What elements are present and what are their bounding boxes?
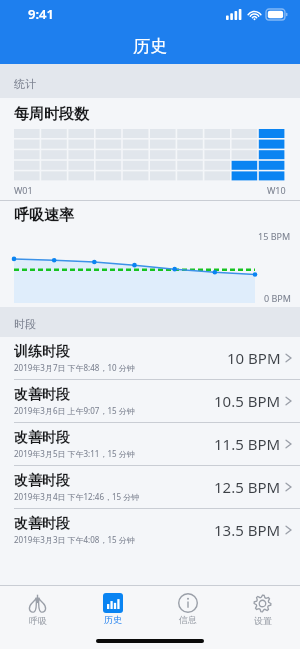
staticText: 2019年3月3日 下午4:08，15 分钟: [14, 534, 135, 545]
button[interactable]: 训练时段: [0, 337, 300, 379]
button[interactable]: 改善时段: [0, 509, 300, 551]
staticText: 2019年3月6日 上午9:07，15 分钟: [14, 405, 135, 416]
staticText: 信息: [179, 614, 197, 625]
staticText: 10 BPM: [227, 348, 281, 368]
staticText: 改善时段: [14, 386, 70, 404]
button[interactable]: 改善时段: [0, 423, 300, 465]
staticText: W10: [267, 184, 286, 196]
staticText: 呼吸速率: [14, 206, 74, 225]
button[interactable]: 呼吸: [0, 586, 75, 632]
staticText: 统计: [14, 77, 36, 91]
staticText: 12.5 BPM: [214, 477, 281, 497]
button[interactable]: 改善时段: [0, 466, 300, 508]
staticText: 9:41: [28, 5, 54, 23]
button[interactable]: 信息: [150, 586, 225, 632]
staticText: 每周时段数: [14, 105, 89, 124]
staticText: 训练时段: [14, 343, 70, 361]
staticText: 改善时段: [14, 429, 70, 447]
staticText: 历史: [133, 36, 167, 57]
staticText: 2019年3月5日 下午3:11，15 分钟: [14, 448, 135, 459]
staticText: 改善时段: [14, 472, 70, 490]
staticText: 改善时段: [14, 515, 70, 533]
button[interactable]: 设置: [225, 586, 300, 632]
staticText: 呼吸: [29, 615, 47, 626]
staticText: 时段: [14, 317, 36, 331]
staticText: 13.5 BPM: [214, 520, 281, 540]
staticText: 设置: [254, 615, 272, 626]
staticText: 10.5 BPM: [214, 391, 281, 411]
button[interactable]: 改善时段: [0, 380, 300, 422]
staticText: W01: [14, 184, 33, 196]
staticText: 11.5 BPM: [214, 434, 281, 454]
staticText: 历史: [104, 614, 122, 625]
staticText: 2019年3月4日 下午12:46，15 分钟: [14, 491, 140, 502]
staticText: 0 BPM: [264, 292, 291, 304]
staticText: 15 BPM: [258, 230, 291, 242]
button[interactable]: 历史: [75, 586, 150, 632]
staticText: 2019年3月7日 下午8:48，10 分钟: [14, 362, 135, 373]
